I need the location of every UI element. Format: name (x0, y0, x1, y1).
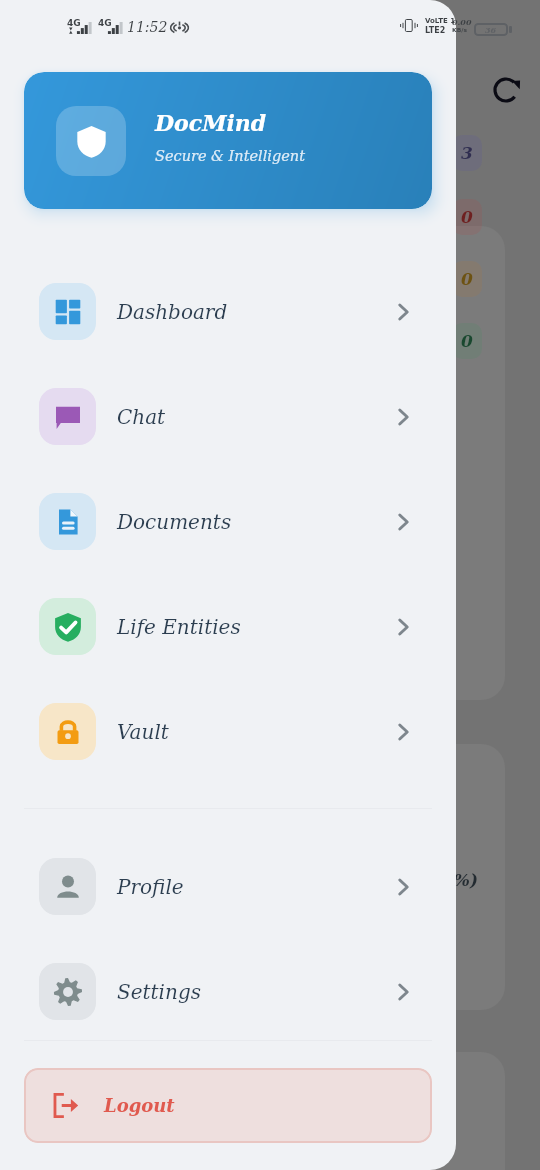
button[interactable]: Profile (0, 834, 456, 939)
staticText: 36 (485, 25, 497, 34)
staticText: 4G (67, 18, 81, 28)
staticText: Profile (117, 875, 184, 898)
button[interactable]: Chat (0, 364, 456, 469)
staticText: Vault (117, 720, 169, 743)
staticText: KB/s (452, 26, 467, 33)
staticText: Dashboard (117, 300, 228, 323)
button[interactable]: Logout (24, 1068, 432, 1143)
button[interactable]: Settings (0, 939, 456, 1044)
staticText: Secure & Intelligent (155, 148, 306, 165)
button[interactable]: Life Entities (0, 574, 456, 679)
staticText: 4G (98, 18, 112, 28)
staticText: Chat (117, 405, 166, 428)
button[interactable]: Documents (0, 469, 456, 574)
staticText: 0.00 (452, 17, 472, 26)
staticText: 0 (461, 331, 473, 351)
staticText: 0 (461, 269, 473, 289)
other: Refresh (495, 77, 525, 107)
staticText: Documents (117, 510, 232, 533)
staticText: Life Entities (117, 615, 241, 638)
staticText: 3 (461, 143, 473, 163)
staticText: 0%) (442, 870, 479, 890)
staticText: 0 (461, 207, 473, 227)
staticText: 11:52 (127, 19, 168, 35)
staticText: LTE2 (425, 26, 446, 35)
button[interactable]: Dashboard (0, 259, 456, 364)
button[interactable]: Vault (0, 679, 456, 784)
staticText: DocMind (155, 110, 267, 136)
staticText: Settings (117, 980, 201, 1003)
staticText: VoLTE 1 (425, 17, 456, 25)
staticText: Logout (104, 1095, 175, 1116)
